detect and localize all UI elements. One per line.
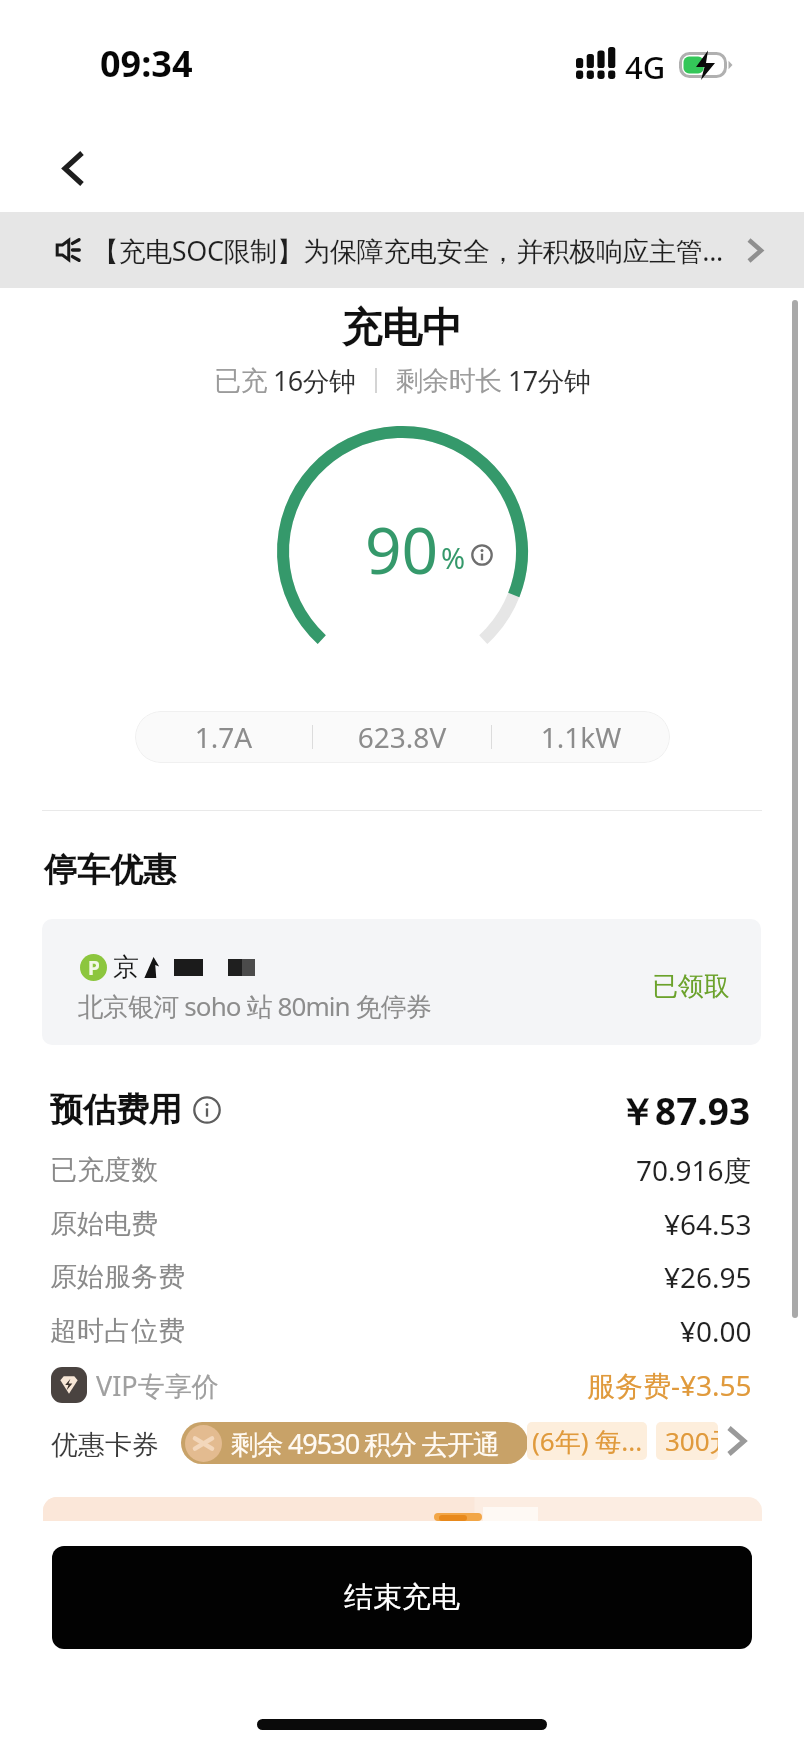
staticText: 16分钟 — [273, 362, 356, 399]
staticText: 原始电费 — [50, 1207, 158, 1241]
staticText: 已充度数 — [50, 1153, 158, 1187]
button[interactable]: 结束充电 — [52, 1546, 752, 1649]
staticText: VIP专享价 — [96, 1367, 219, 1404]
staticText: 剩余时长 — [396, 364, 502, 398]
staticText: ¥26.95 — [664, 1258, 752, 1296]
staticText: 充电中 — [342, 302, 462, 352]
staticText: 停车优惠 — [44, 849, 176, 891]
staticText: ¥64.53 — [664, 1205, 752, 1243]
staticText: 服务费-¥3.55 — [587, 1366, 752, 1404]
staticText: 1.1kW — [492, 718, 670, 756]
staticText: 【充电SOC限制】为保障充电安全，并积极响应主管... — [92, 232, 732, 269]
staticText: 剩余 49530 积分 去开通 — [231, 1425, 499, 1462]
staticText: 70.916度 — [636, 1151, 752, 1189]
staticText: % — [441, 538, 466, 577]
staticText: 17分钟 — [508, 362, 591, 399]
staticText: ¥0.00 — [680, 1312, 752, 1350]
staticText: 已充 — [214, 364, 267, 398]
staticText: P — [88, 955, 100, 981]
staticText: 1.7A — [135, 718, 312, 756]
button[interactable]: Back — [45, 140, 101, 196]
staticText: 已领取 — [652, 970, 730, 1003]
button[interactable]: 优惠卡券 — [0, 1412, 804, 1472]
staticText: 300元 — [665, 1423, 718, 1459]
button[interactable]: P — [42, 919, 761, 1045]
staticText: ￥87.93 — [618, 1085, 751, 1136]
staticText: 超时占位费 — [50, 1314, 185, 1348]
staticText: 优惠卡券 — [51, 1428, 159, 1462]
staticText: 预估费用 — [50, 1089, 182, 1131]
staticText: 原始服务费 — [50, 1260, 185, 1294]
staticText: 结束充电 — [344, 1579, 460, 1616]
staticText: 北京银河 soho 站 80min 免停券 — [78, 988, 431, 1024]
staticText: 4G — [625, 46, 666, 88]
staticText: 09:34 — [100, 39, 193, 88]
staticText: 京 — [113, 951, 139, 984]
staticText: 90 — [365, 506, 439, 593]
staticText: 623.8V — [313, 718, 491, 756]
staticText: (6年) 每... — [532, 1423, 643, 1459]
button[interactable]: 【充电SOC限制】为保障充电安全，并积极响应主管... — [0, 212, 804, 288]
